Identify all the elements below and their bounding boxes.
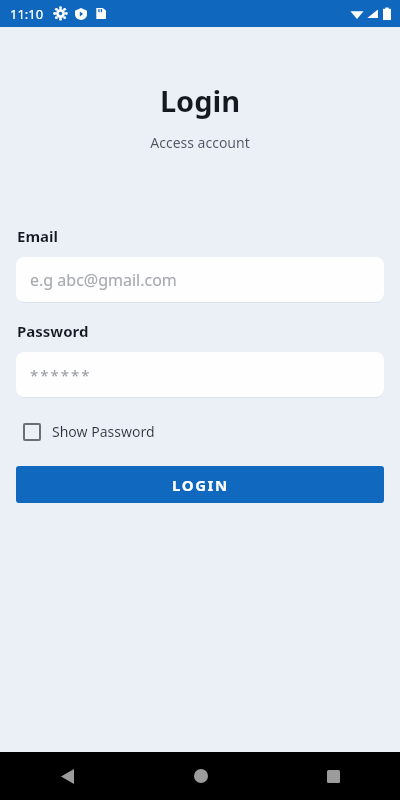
button[interactable]: Recent apps <box>267 752 400 800</box>
button[interactable]: ****** <box>16 352 384 397</box>
staticText: Password <box>17 321 89 341</box>
staticText: e.g abc@gmail.com <box>30 269 177 291</box>
staticText: Show Password <box>52 422 155 441</box>
button[interactable]: e.g abc@gmail.com <box>16 257 384 302</box>
staticText: Email <box>17 226 58 246</box>
button[interactable]: Show Password <box>16 416 162 447</box>
button[interactable]: Back <box>0 752 134 800</box>
button[interactable]: LOGIN <box>16 466 384 503</box>
button[interactable]: Home <box>134 752 267 800</box>
staticText: Access account <box>0 133 400 152</box>
staticText: LOGIN <box>172 475 229 495</box>
staticText: ****** <box>30 365 92 385</box>
staticText: Login <box>0 81 400 120</box>
staticText: 11:10 <box>10 5 44 23</box>
